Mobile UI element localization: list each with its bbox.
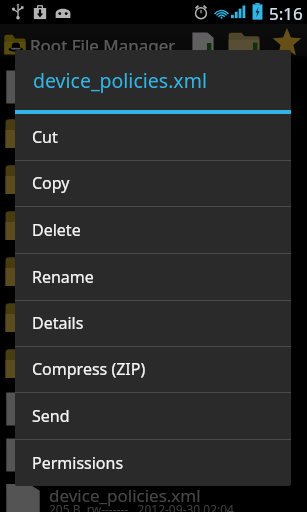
button[interactable]: bluetooth (0, 156, 307, 202)
staticText: drwx------ 2012-09-30 02:04 (49, 271, 207, 287)
button[interactable]: Favorites (266, 24, 307, 56)
staticText: drwx------ 2012-09-30 02:04 (49, 317, 207, 333)
button[interactable]: Copy (15, 160, 291, 206)
button[interactable]: Compress (ZIP) (15, 346, 291, 392)
button[interactable]: dropbox (0, 202, 307, 248)
button[interactable]: Permissions (15, 439, 291, 486)
staticText: device_policies.xml (33, 67, 207, 94)
button[interactable]: Rename (15, 253, 291, 300)
staticText: packages.list (49, 438, 152, 461)
staticText: Details (32, 312, 84, 334)
button[interactable]: New folder (223, 24, 263, 56)
staticText: Cut (32, 126, 58, 148)
button[interactable]: Cut (15, 114, 291, 160)
staticText: drwx------ 2012-09-30 02:04 (49, 179, 207, 195)
button[interactable]: packages.list (0, 432, 307, 478)
button[interactable]: inputmethod (0, 248, 307, 294)
staticText: Permissions (32, 452, 124, 474)
staticText: Rename (32, 266, 94, 288)
staticText: 49 KB rw------- 2012-09-30 02:04 (49, 87, 235, 103)
staticText: device_policies.xml (49, 484, 201, 507)
button[interactable]: sync (0, 340, 307, 386)
button[interactable]: Details (15, 300, 291, 346)
button[interactable]: netstats (0, 294, 307, 340)
staticText: netstats (49, 300, 114, 323)
staticText: drwx------ 2012-09-30 02:04 (49, 133, 207, 149)
button[interactable]: device_policies.xml (0, 478, 307, 512)
staticText: dropbox (49, 208, 117, 231)
button[interactable]: backup (0, 110, 307, 156)
staticText: accounts.db (49, 70, 146, 93)
staticText: drwx------ 2012-09-30 02:04 (49, 225, 207, 241)
staticText: drwx------ 2012-09-30 02:04 (49, 363, 207, 379)
staticText: sync (49, 346, 85, 369)
button[interactable]: New file (186, 24, 222, 56)
staticText: Send (32, 405, 70, 427)
staticText: backup (49, 116, 108, 139)
staticText: 4.8 KB rw------- 2012-09-30 02:04 (49, 455, 238, 471)
button[interactable]: Send (15, 392, 291, 439)
staticText: Root File Manager (30, 34, 176, 57)
staticText: appwidgets.xml (49, 392, 176, 415)
staticText: 205 B rw------- 2012-09-30 02:04 (49, 501, 234, 512)
staticText: bluetooth (49, 162, 128, 185)
staticText: inputmethod (49, 254, 154, 277)
staticText: 5:16 (269, 2, 303, 25)
staticText: Copy (32, 172, 70, 194)
staticText: Delete (32, 219, 81, 241)
button[interactable]: appwidgets.xml (0, 386, 307, 432)
staticText: Compress (ZIP) (32, 358, 146, 380)
button[interactable]: Delete (15, 206, 291, 253)
staticText: 1.2 KB rw------- 2012-09-30 02:04 (49, 409, 238, 425)
button[interactable]: accounts.db (0, 64, 307, 110)
